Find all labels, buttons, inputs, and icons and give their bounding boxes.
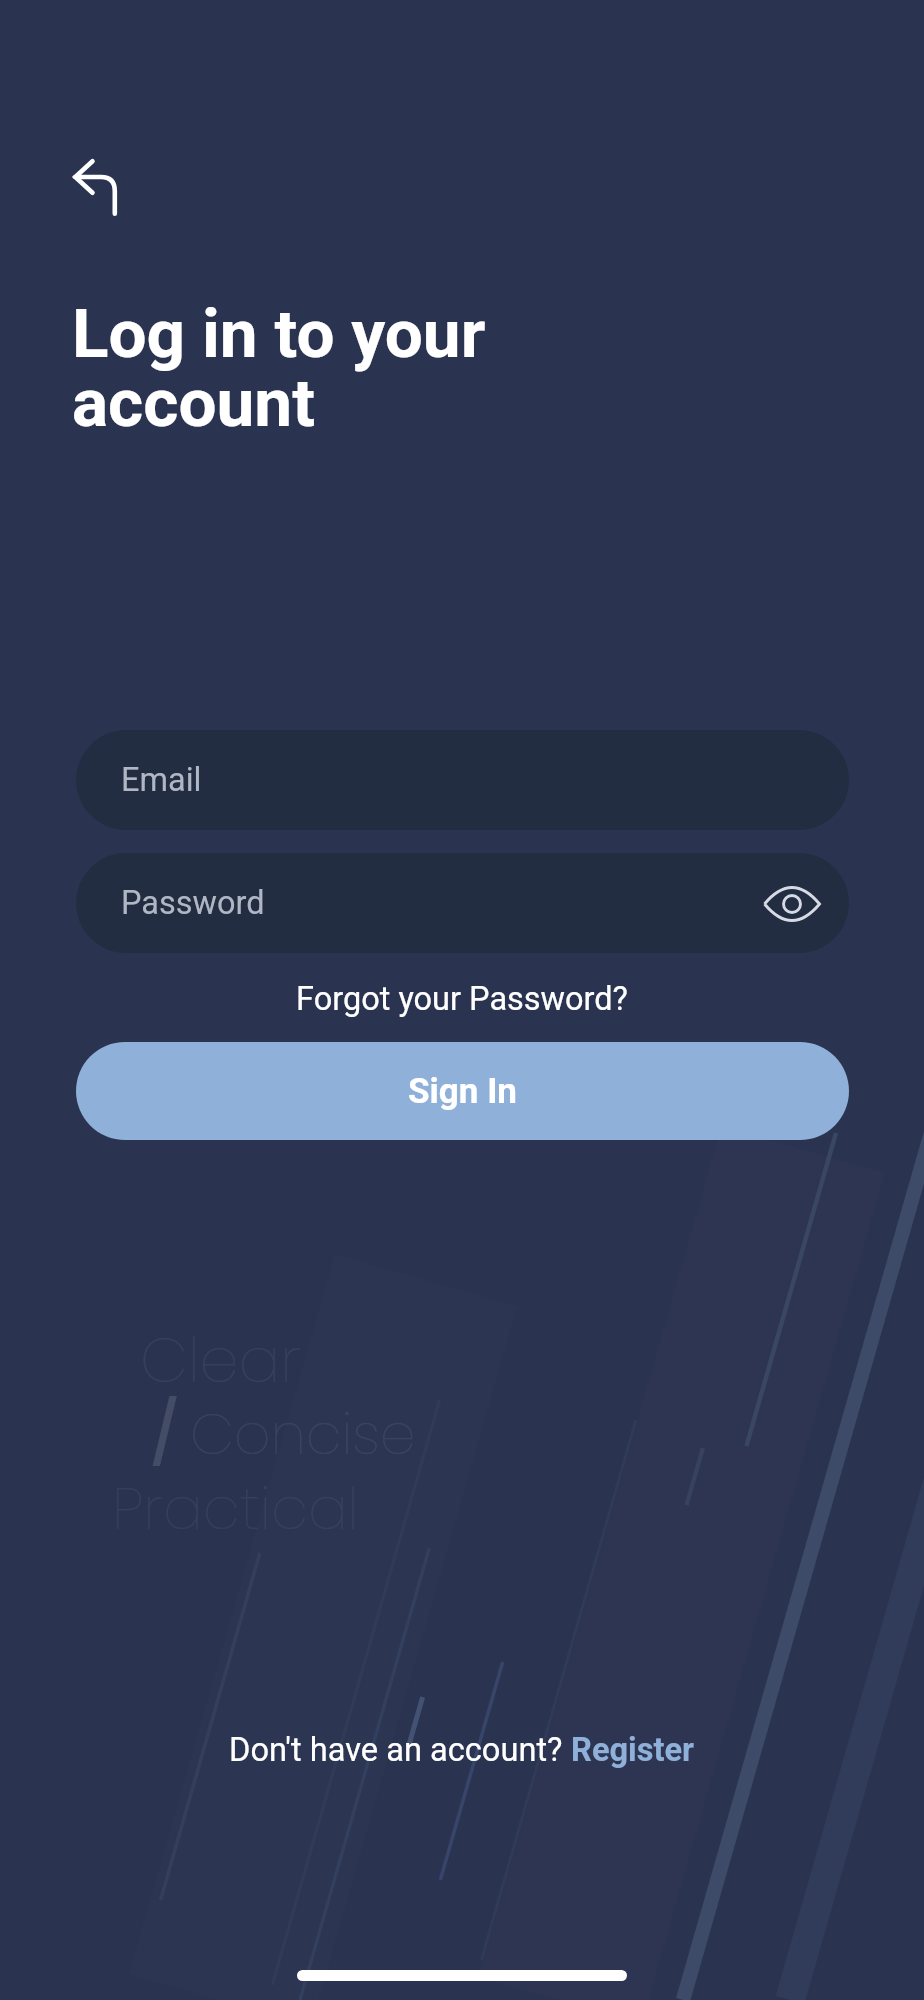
button[interactable]: Email: [76, 730, 849, 830]
staticText: Don't have an account?: [229, 1731, 571, 1769]
button[interactable]: Don't have an account?: [229, 1731, 695, 1769]
staticText: Log in to your account: [72, 294, 486, 443]
staticText: Forgot your Password?: [296, 980, 628, 1018]
staticText: Register: [571, 1731, 695, 1769]
button[interactable]: Sign In: [76, 1042, 849, 1140]
button[interactable]: Password: [76, 853, 849, 953]
staticText: Sign In: [408, 1071, 517, 1112]
button[interactable]: Show password: [756, 867, 828, 939]
button[interactable]: Back: [56, 145, 148, 237]
staticText: Email: [121, 761, 202, 799]
button[interactable]: Forgot your Password?: [0, 980, 924, 1018]
staticText: Password: [121, 884, 265, 922]
staticText: Concise: [190, 1394, 416, 1474]
staticText: /: [149, 1390, 181, 1477]
staticText: Clear: [140, 1317, 301, 1404]
